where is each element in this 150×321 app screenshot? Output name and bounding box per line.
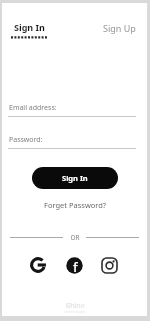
staticText: OR xyxy=(0,233,150,242)
staticText: Sign Up xyxy=(103,22,136,34)
staticText: f xyxy=(73,258,78,275)
staticText: technologies xyxy=(0,309,150,314)
staticText: Sign In xyxy=(62,173,88,183)
button[interactable]: Sign In xyxy=(8,21,50,40)
staticText: Password: xyxy=(9,135,43,145)
staticText: Forget Password? xyxy=(44,200,107,210)
button[interactable]: f xyxy=(66,257,83,274)
button[interactable] xyxy=(101,257,118,274)
button[interactable]: Sign Up xyxy=(98,22,140,40)
staticText: Sign In xyxy=(14,21,45,33)
staticText: Email address: xyxy=(9,103,57,113)
button[interactable]: Forget Password? xyxy=(0,198,150,211)
button[interactable] xyxy=(29,256,47,274)
button[interactable]: Sign In xyxy=(32,167,118,189)
staticText: Ghino xyxy=(0,301,150,310)
